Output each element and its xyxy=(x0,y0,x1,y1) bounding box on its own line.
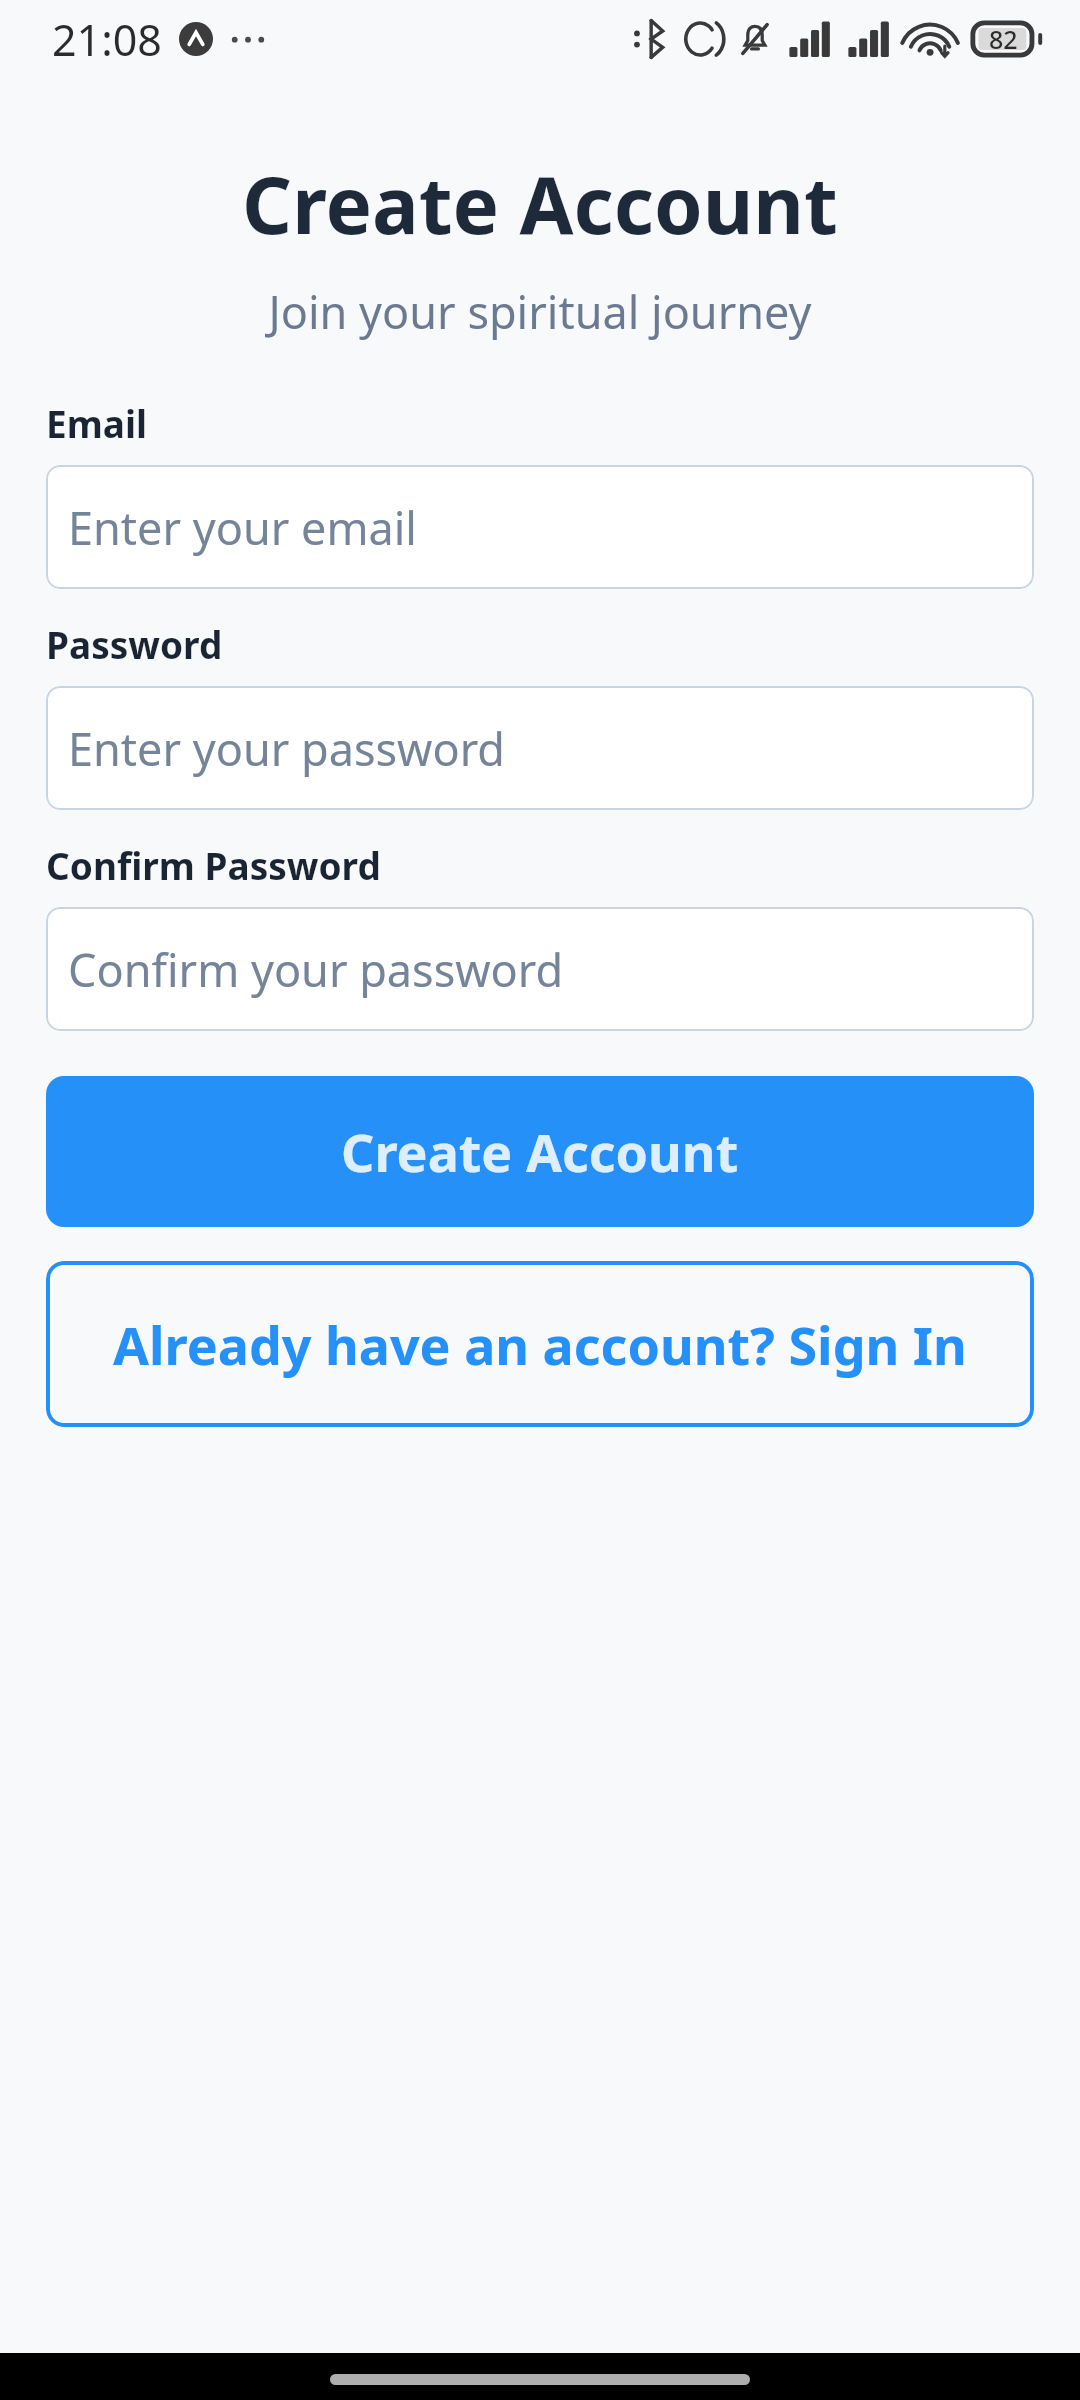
other: Home gesture handle xyxy=(330,2374,750,2385)
staticText: 82 xyxy=(989,22,1018,56)
button[interactable]: Enter your password xyxy=(46,686,1034,810)
staticText: Confirm Password xyxy=(46,840,381,890)
button[interactable]: Already have an account? Sign In xyxy=(46,1261,1034,1427)
staticText: Create Account xyxy=(341,1116,739,1187)
staticText: 21:08 xyxy=(52,10,162,69)
staticText: Confirm your password xyxy=(68,939,564,1000)
staticText: Password xyxy=(46,619,223,669)
staticText: Join your spiritual journey xyxy=(0,281,1080,342)
staticText: Email xyxy=(46,398,148,448)
staticText: Enter your password xyxy=(68,718,505,779)
staticText: Already have an account? Sign In xyxy=(113,1309,967,1380)
staticText: Enter your email xyxy=(68,497,417,558)
button[interactable]: Enter your email xyxy=(46,465,1034,589)
button[interactable]: Confirm your password xyxy=(46,907,1034,1031)
button[interactable]: Create Account xyxy=(46,1076,1034,1227)
staticText: Create Account xyxy=(0,151,1080,257)
